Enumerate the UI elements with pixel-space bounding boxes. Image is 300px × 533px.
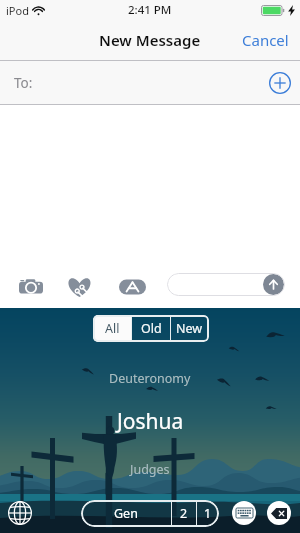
button[interactable]: App Store [119, 273, 146, 300]
button[interactable]: Camera [18, 273, 43, 298]
staticText: Judges [130, 461, 170, 478]
button[interactable]: Language [8, 501, 32, 525]
button[interactable]: Delete [267, 501, 291, 525]
staticText: iPod [6, 3, 29, 18]
button[interactable]: Digital Touch [67, 273, 92, 298]
button[interactable]: 1 [197, 500, 218, 527]
staticText: Old [141, 320, 162, 337]
button[interactable]: Gen [81, 500, 171, 527]
staticText: To: [14, 74, 33, 92]
staticText: All [105, 320, 120, 337]
staticText: Deuteronomy [109, 370, 191, 387]
button[interactable]: Send [263, 274, 284, 295]
button[interactable]: Keyboard [232, 501, 256, 525]
button[interactable]: Cancel [231, 21, 300, 59]
staticText: Joshua [117, 407, 184, 436]
staticText: 2:41 PM [128, 2, 172, 18]
staticText: Gen [114, 505, 138, 522]
staticText: New [176, 320, 203, 337]
button[interactable]: Add contact [269, 72, 291, 94]
staticText: 2 [180, 505, 188, 522]
staticText: 1 [204, 505, 212, 522]
staticText: New Message [99, 30, 201, 50]
button[interactable]: 2 [172, 500, 196, 527]
button[interactable]: New [171, 315, 208, 342]
button[interactable]: Send [167, 273, 285, 296]
staticText: Cancel [242, 30, 289, 50]
button[interactable]: Old [132, 315, 170, 342]
button[interactable]: All [93, 315, 131, 342]
